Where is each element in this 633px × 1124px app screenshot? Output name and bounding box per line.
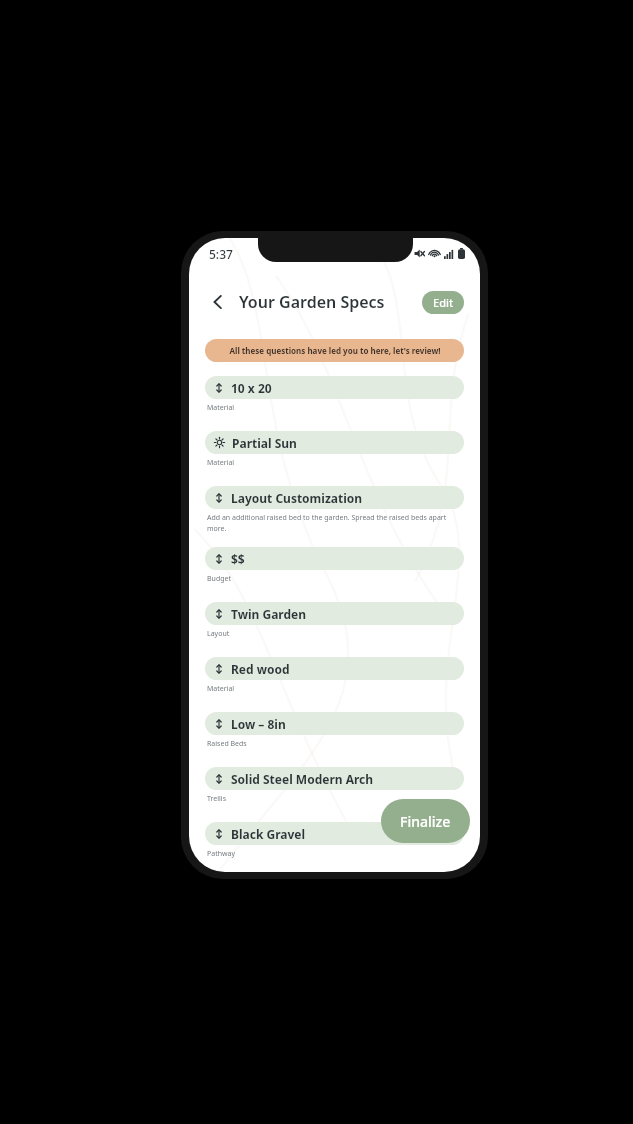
staticText: Pathway [207,849,236,859]
staticText: Solid Steel Modern Arch [231,771,374,787]
staticText: Raised Beds [207,739,247,749]
staticText: Layout [207,629,230,639]
button[interactable]: Black Gravel [205,822,464,845]
staticText: Partial Sun [232,435,297,451]
staticText: Red wood [231,661,290,677]
staticText: Low – 8in [231,716,286,732]
staticText: 5:37 [209,246,233,262]
button[interactable]: $$ [205,547,464,570]
staticText: Material [207,684,235,694]
staticText: $$ [231,551,245,567]
staticText: Trellis [207,794,227,804]
button[interactable]: Solid Steel Modern Arch [205,767,464,790]
button[interactable]: Layout Customization [205,486,464,509]
button[interactable]: Back [205,289,231,315]
staticText: Finalize [400,812,451,831]
staticText: Twin Garden [231,606,307,622]
staticText: 10 x 20 [231,380,272,396]
staticText: Material [207,458,235,468]
button[interactable]: 10 x 20 [205,376,464,399]
button[interactable]: Twin Garden [205,602,464,625]
button[interactable]: Edit [422,291,464,314]
staticText: Budget [207,574,231,584]
staticText: Add an additional raised bed to the gard… [207,513,452,533]
button[interactable]: Partial Sun [205,431,464,454]
button[interactable]: Finalize [381,799,470,843]
staticText: Black Gravel [231,826,306,842]
staticText: Material [207,403,235,413]
staticText: All these questions have led you to here… [229,345,441,356]
staticText: Layout Customization [231,490,363,506]
staticText: Your Garden Specs [239,291,385,313]
staticText: Edit [433,295,454,310]
button[interactable]: Low – 8in [205,712,464,735]
button[interactable]: Red wood [205,657,464,680]
